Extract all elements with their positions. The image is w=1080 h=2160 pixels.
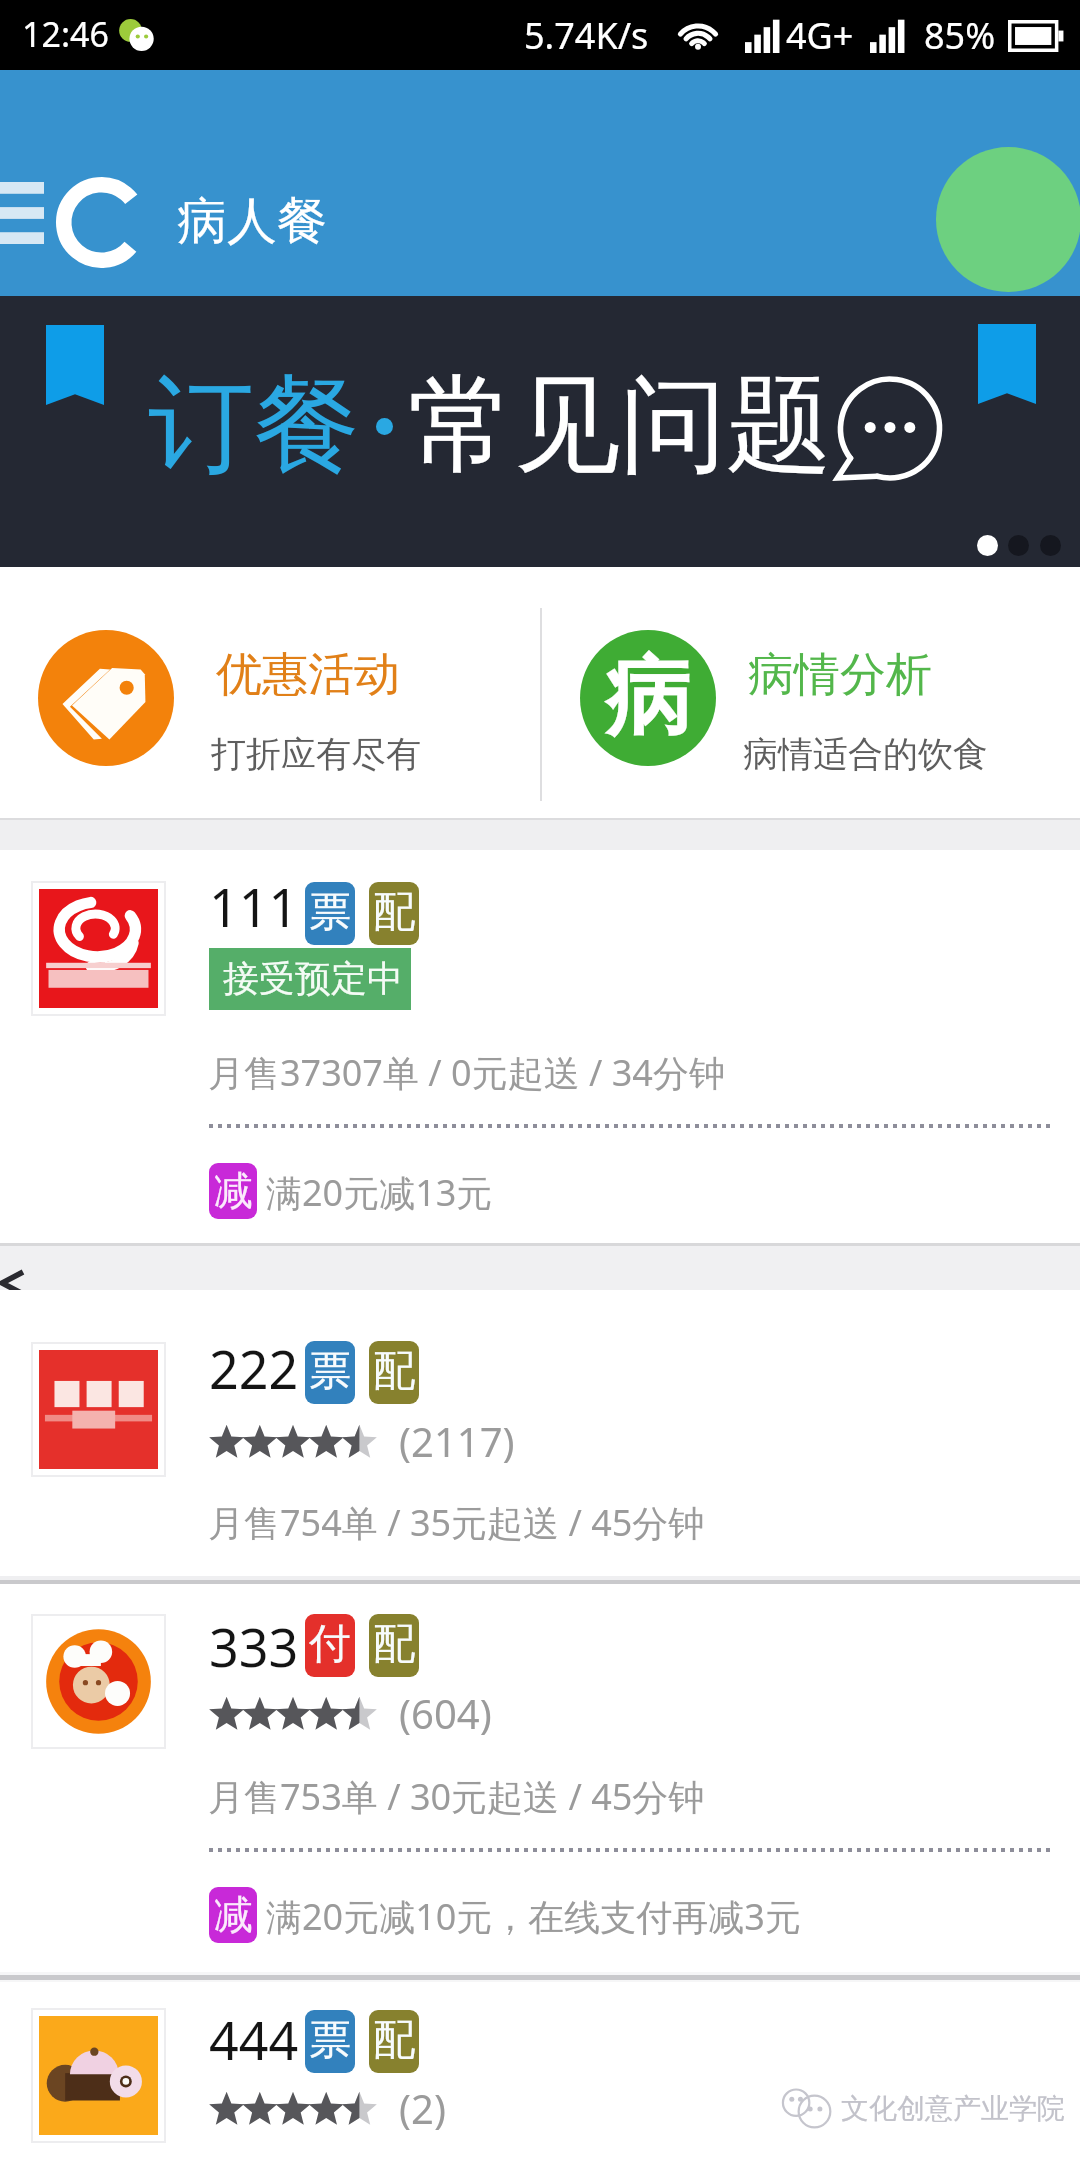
staticText: 配	[373, 2014, 415, 2067]
staticText: 222	[209, 1333, 299, 1404]
staticText: 常见问题	[408, 359, 832, 493]
staticText: 付	[309, 1618, 351, 1671]
staticText: 减	[214, 1166, 253, 1215]
staticText: (604)	[399, 1686, 492, 1740]
staticText: 月售754单 / 35元起送 / 45分钟	[208, 1498, 705, 1547]
button[interactable]: 病	[542, 567, 1080, 818]
staticText: 444	[209, 2004, 299, 2075]
staticText: (2117)	[399, 1414, 515, 1468]
staticText: 打折应有尽有	[211, 732, 421, 776]
staticText: 配	[373, 886, 415, 939]
button[interactable]: 222	[0, 1290, 1080, 1570]
staticText: 票	[309, 2014, 351, 2067]
staticText: 优惠活动	[216, 646, 400, 704]
staticText: 文化创意产业学院	[841, 2091, 1065, 2126]
staticText: 85%	[924, 11, 996, 60]
staticText: 月售37307单 / 0元起送 / 34分钟	[208, 1048, 725, 1097]
button[interactable]: Profile	[936, 147, 1080, 292]
staticText: 订餐	[148, 359, 360, 493]
staticText: 333	[209, 1611, 299, 1682]
staticText: 减	[214, 1890, 253, 1939]
staticText: 病人餐	[177, 190, 327, 253]
button[interactable]: 优惠活动	[0, 567, 540, 818]
button[interactable]: 333	[0, 1584, 1080, 1971]
button[interactable]: 111	[0, 850, 1080, 1243]
staticText: 病情分析	[748, 646, 932, 704]
staticText: 12:46	[22, 11, 109, 57]
staticText: 111	[209, 871, 299, 942]
staticText: 配	[373, 1618, 415, 1671]
staticText: (2)	[399, 2081, 446, 2135]
staticText: 月售753单 / 30元起送 / 45分钟	[208, 1772, 705, 1821]
staticText: 病	[605, 643, 691, 751]
staticText: 票	[309, 886, 351, 939]
staticText: 5.74K/s	[524, 11, 649, 60]
staticText: 病情适合的饮食	[743, 732, 988, 776]
staticText: 票	[309, 1345, 351, 1398]
staticText: 4G+	[786, 11, 854, 60]
staticText: 满20元减13元	[266, 1168, 493, 1217]
staticText: 配	[373, 1345, 415, 1398]
staticText: 满20元减10元，在线支付再减3元	[266, 1892, 801, 1941]
button[interactable]: Menu	[0, 182, 44, 244]
button[interactable]: 444	[0, 1983, 1080, 2160]
staticText: 接受预定中	[223, 956, 403, 1001]
